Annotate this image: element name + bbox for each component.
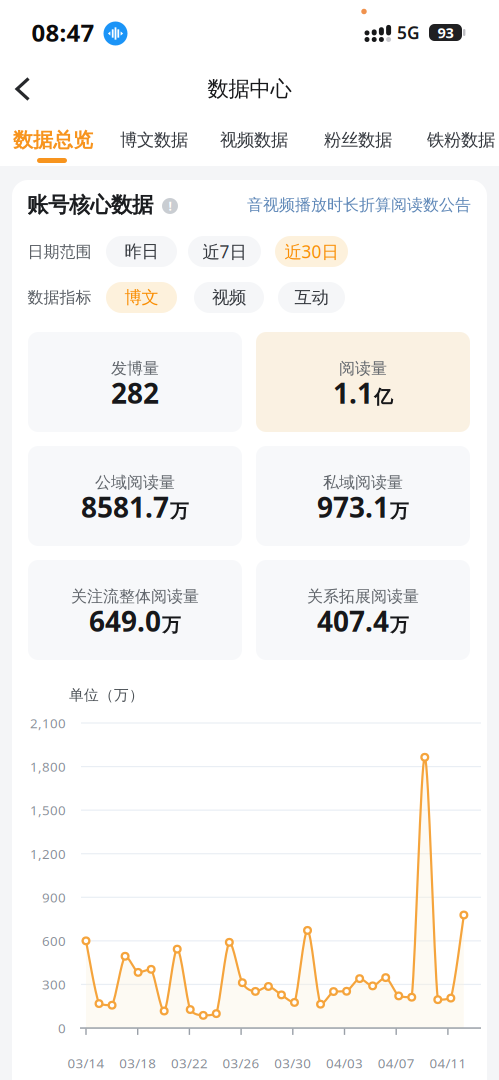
staticText: 音视频播放时长折算阅读数公告 [247,195,471,215]
button[interactable] [15,77,31,101]
staticText: 近30日 [284,240,338,263]
staticText: 08:47 [31,17,94,48]
button[interactable]: 粉丝数据 [320,116,396,164]
staticText: 8581.7 [81,488,169,526]
staticText: 数据总览 [13,128,93,152]
staticText: 93 [437,23,453,42]
staticText: 300 [42,976,66,993]
staticText: 万 [162,614,181,637]
staticText: 04/03 [326,1054,363,1072]
staticText: 649.0 [89,602,161,640]
staticText: 1,500 [30,801,66,819]
button[interactable]: 近7日 [188,236,261,267]
staticText: 2,100 [30,714,66,732]
staticText: 600 [42,932,66,950]
staticText: 近7日 [202,240,246,263]
button[interactable]: 铁粉数据 [423,116,499,164]
button[interactable]: 博文数据 [116,116,192,164]
staticText: 万 [390,614,409,637]
staticText: 公域阅读量 [95,473,175,492]
staticText: 04/11 [429,1054,466,1072]
staticText: 单位（万） [69,686,144,704]
staticText: 282 [111,374,159,412]
button[interactable]: 音视频播放时长折算阅读数公告 [231,193,471,217]
staticText: 03/30 [274,1054,311,1072]
staticText: 5G [397,21,420,44]
staticText: 900 [42,888,66,906]
staticText: 04/07 [378,1054,415,1072]
button[interactable]: 昨日 [106,236,177,267]
button[interactable]: 博文 [106,282,177,313]
staticText: 关注流整体阅读量 [71,587,199,606]
staticText: 0 [58,1019,66,1037]
staticText: ! [168,198,171,214]
staticText: 03/22 [171,1054,208,1072]
staticText: 407.4 [317,602,389,640]
staticText: 铁粉数据 [427,129,495,151]
staticText: 973.1 [317,488,389,526]
button[interactable]: 近30日 [275,236,348,267]
staticText: 亿 [374,386,393,409]
staticText: 博文 [124,287,158,308]
staticText: 发博量 [111,359,159,378]
staticText: 账号核心数据 [27,192,153,218]
staticText: 阅读量 [339,359,387,378]
staticText: 1,200 [30,845,66,863]
button[interactable]: 视频 [194,282,264,313]
staticText: 1,800 [30,758,66,775]
staticText: 私域阅读量 [323,473,403,492]
staticText: 博文数据 [120,129,188,151]
staticText: 视频数据 [220,129,288,151]
staticText: 03/26 [223,1054,260,1072]
staticText: 数据中心 [207,76,291,102]
staticText: 日期范围 [27,242,91,262]
staticText: 关系拓展阅读量 [307,587,419,606]
button[interactable]: 互动 [278,282,345,313]
staticText: 数据指标 [27,288,91,307]
staticText: 互动 [294,287,328,308]
button[interactable]: 数据总览 [7,116,99,164]
button[interactable]: 视频数据 [216,116,292,164]
staticText: 万 [170,500,189,523]
button[interactable]: ! [162,198,178,214]
staticText: 03/18 [119,1054,156,1072]
staticText: 粉丝数据 [324,129,392,151]
staticText: 昨日 [124,241,158,262]
staticText: 视频 [212,287,246,308]
staticText: 1.1 [333,374,373,412]
staticText: 03/14 [67,1054,104,1072]
staticText: 万 [390,500,409,523]
